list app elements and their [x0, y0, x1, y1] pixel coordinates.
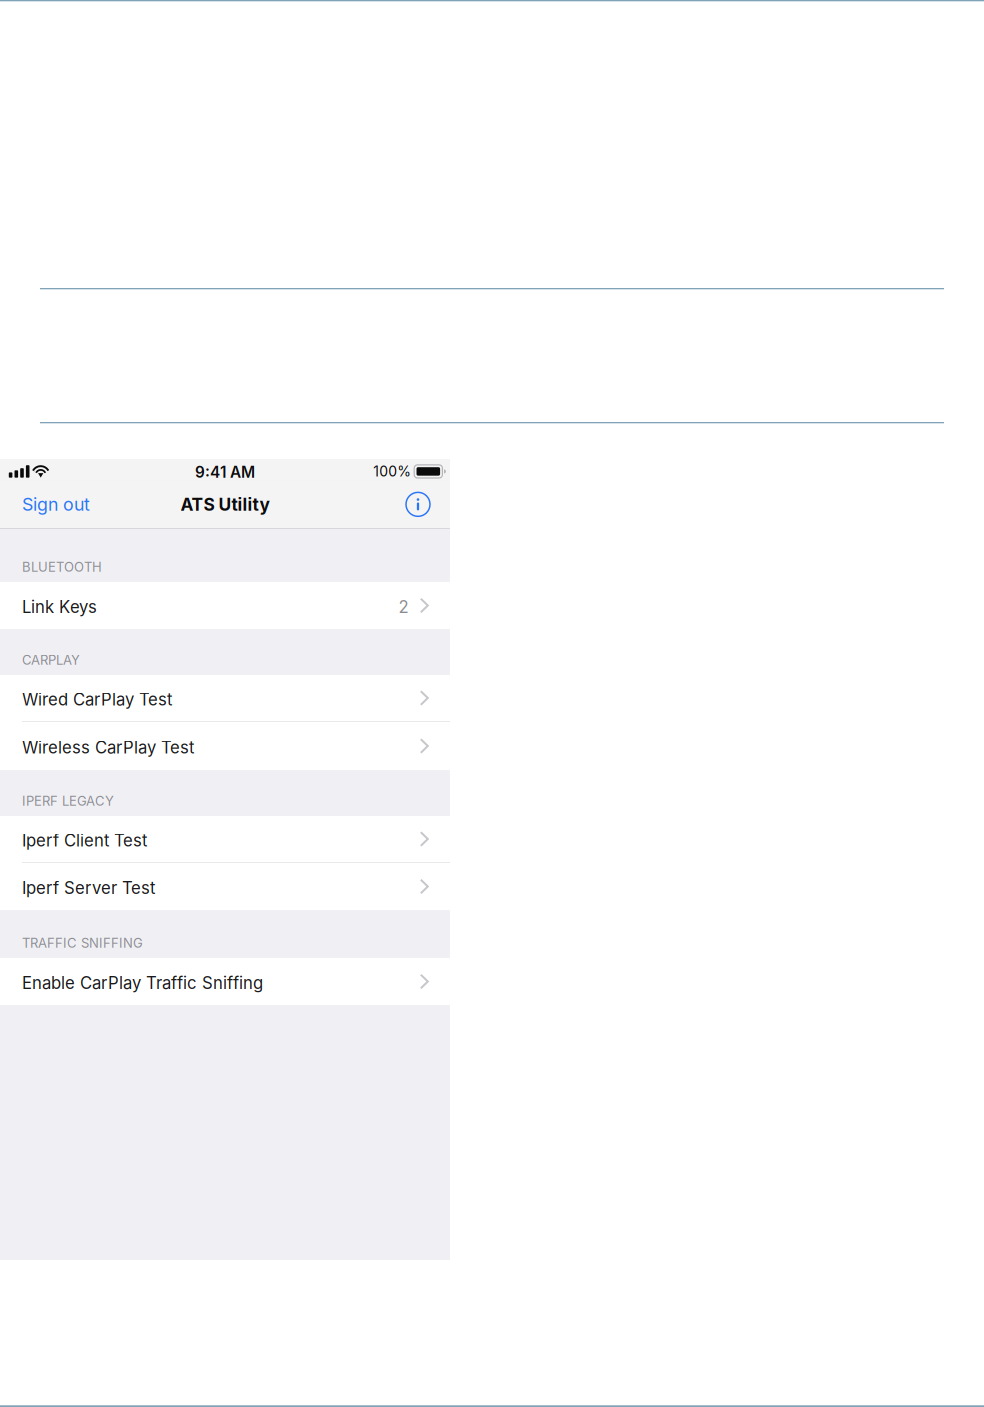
button[interactable]: Enable CarPlay Traffic Sniffing	[0, 958, 450, 1005]
staticText: 2	[399, 597, 409, 617]
staticText: Wireless CarPlay Test	[22, 737, 194, 758]
staticText: Wired CarPlay Test	[22, 689, 172, 710]
button[interactable]: Wired CarPlay Test	[0, 675, 450, 722]
staticText: Link Keys	[22, 597, 97, 617]
staticText: CARPLAY	[22, 652, 80, 668]
staticText: Iperf Server Test	[22, 878, 155, 898]
button[interactable]: Iperf Server Test	[0, 863, 450, 910]
staticText: Iperf Client Test	[22, 830, 147, 851]
staticText: 100%	[373, 463, 411, 480]
staticText: BLUETOOTH	[22, 559, 102, 575]
button[interactable]: Sign out	[0, 481, 100, 528]
staticText: ATS Utility	[180, 494, 269, 515]
button[interactable]: Info	[395, 481, 450, 528]
button[interactable]: Iperf Client Test	[0, 816, 450, 863]
staticText: TRAFFIC SNIFFING	[22, 935, 143, 951]
button[interactable]: Wireless CarPlay Test	[0, 722, 450, 770]
staticText: IPERF LEGACY	[22, 793, 114, 809]
button[interactable]: Link Keys	[0, 582, 450, 629]
staticText: Enable CarPlay Traffic Sniffing	[22, 973, 263, 993]
staticText: 9:41 AM	[195, 463, 255, 482]
staticText: Sign out	[22, 494, 90, 515]
